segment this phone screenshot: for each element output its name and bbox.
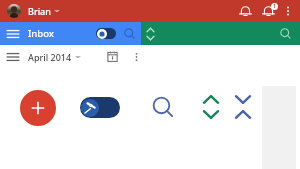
button[interactable]: Toggle — [96, 28, 116, 39]
staticText: Inbox — [28, 27, 54, 40]
button[interactable]: Add — [20, 90, 56, 126]
button[interactable]: Notifications — [237, 2, 254, 20]
button[interactable]: Search — [150, 94, 176, 120]
staticText: 1 — [273, 3, 276, 10]
button[interactable]: Expand or collapse — [145, 26, 156, 42]
button[interactable]: Notifications, 1 new — [260, 2, 277, 20]
button[interactable]: Pin toggle — [80, 97, 120, 118]
staticText: Brian — [28, 5, 51, 17]
button[interactable]: Navigation menu — [6, 27, 20, 41]
button[interactable]: Sort ascending or descending — [200, 92, 222, 122]
button[interactable]: Calendar — [105, 49, 120, 64]
button[interactable]: Brian — [28, 5, 60, 17]
button[interactable]: Search — [279, 27, 292, 40]
button[interactable]: Account Brian — [7, 4, 21, 18]
button[interactable]: Search — [123, 27, 136, 40]
button[interactable]: Collapse — [232, 92, 254, 122]
button[interactable]: More options — [130, 49, 143, 65]
button[interactable]: Navigation menu — [6, 50, 20, 64]
button[interactable]: More options — [281, 2, 295, 20]
button[interactable]: April 2014 — [28, 51, 81, 63]
staticText: April 2014 — [28, 51, 72, 63]
